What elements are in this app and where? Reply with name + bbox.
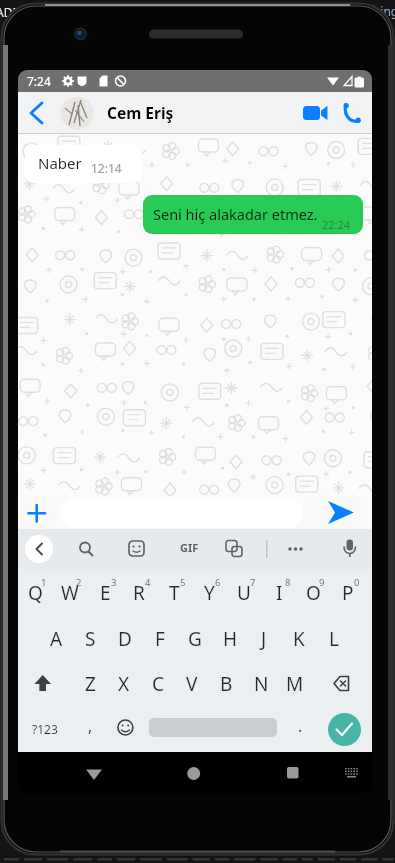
button[interactable]: . bbox=[283, 705, 317, 747]
button[interactable]: P bbox=[331, 572, 365, 614]
staticText: 2 bbox=[76, 576, 82, 589]
button[interactable]: ?123 bbox=[28, 708, 62, 750]
button[interactable] bbox=[275, 756, 311, 790]
staticText: S bbox=[85, 626, 96, 652]
staticText: 9 bbox=[319, 576, 325, 589]
button[interactable]: N bbox=[244, 663, 278, 705]
staticText: 6 bbox=[215, 576, 221, 589]
staticText: GIF bbox=[180, 540, 199, 555]
staticText: Q bbox=[28, 580, 43, 606]
button[interactable] bbox=[71, 534, 101, 564]
button[interactable]: R bbox=[122, 572, 156, 614]
button[interactable]: Q bbox=[18, 572, 52, 614]
button[interactable] bbox=[76, 756, 112, 790]
button[interactable]: G bbox=[178, 618, 212, 660]
button[interactable]: J bbox=[247, 618, 281, 660]
staticText: 22:24 bbox=[322, 217, 351, 232]
staticText: L bbox=[329, 626, 339, 652]
staticText: 4 bbox=[145, 576, 151, 589]
button[interactable]: , bbox=[73, 705, 107, 747]
staticText: , bbox=[88, 715, 93, 737]
staticText: 8 bbox=[285, 576, 291, 589]
button[interactable] bbox=[336, 96, 366, 130]
staticText: V bbox=[186, 671, 198, 697]
staticText: M bbox=[286, 671, 304, 697]
staticText: A bbox=[50, 626, 63, 652]
button[interactable]: W bbox=[53, 572, 87, 614]
button[interactable]: O bbox=[296, 572, 330, 614]
button[interactable] bbox=[219, 534, 249, 564]
staticText: W bbox=[61, 580, 79, 606]
staticText: . bbox=[298, 715, 303, 737]
staticText: Naber bbox=[38, 153, 82, 173]
button[interactable]: A bbox=[39, 618, 73, 660]
staticText: T bbox=[169, 580, 180, 606]
button[interactable] bbox=[18, 92, 52, 134]
button[interactable]: X bbox=[107, 663, 141, 705]
button[interactable] bbox=[25, 535, 53, 563]
button[interactable] bbox=[281, 534, 311, 564]
staticText: 1 bbox=[41, 576, 47, 589]
staticText: G bbox=[188, 626, 202, 652]
button[interactable]: Seni hiç alakadar etmez. bbox=[143, 195, 363, 234]
staticText: D bbox=[118, 626, 132, 652]
button[interactable]: S bbox=[73, 618, 107, 660]
staticText: Seni hiç alakadar etmez. bbox=[153, 204, 318, 224]
staticText: F bbox=[155, 626, 165, 652]
staticText: H bbox=[223, 626, 238, 652]
button[interactable]: L bbox=[317, 618, 351, 660]
staticText: 3 bbox=[111, 576, 117, 589]
button[interactable]: Z bbox=[73, 663, 107, 705]
staticText: O bbox=[306, 580, 321, 606]
staticText: ?123 bbox=[32, 721, 58, 737]
staticText: P bbox=[342, 580, 354, 606]
button[interactable] bbox=[328, 713, 361, 746]
button[interactable]: I bbox=[262, 572, 296, 614]
staticText: 5 bbox=[180, 576, 186, 589]
button[interactable]: F bbox=[143, 618, 177, 660]
button[interactable]: K bbox=[282, 618, 316, 660]
staticText: Z bbox=[85, 671, 96, 697]
staticText: B bbox=[220, 671, 233, 697]
button[interactable]: B bbox=[209, 663, 243, 705]
staticText: 7 bbox=[250, 576, 256, 589]
button[interactable]: E bbox=[88, 572, 122, 614]
button[interactable] bbox=[149, 718, 277, 737]
button[interactable] bbox=[176, 756, 212, 790]
button[interactable] bbox=[320, 498, 360, 528]
staticText: R bbox=[133, 580, 145, 606]
staticText: Y bbox=[204, 580, 215, 606]
button[interactable]: C bbox=[141, 663, 175, 705]
staticText: 7:24 bbox=[27, 73, 51, 89]
button[interactable]: U bbox=[227, 572, 261, 614]
button[interactable]: Naber bbox=[25, 145, 142, 183]
staticText: ADB bbox=[0, 4, 21, 20]
button[interactable]: V bbox=[175, 663, 209, 705]
staticText: U bbox=[237, 580, 251, 606]
staticText: J bbox=[261, 626, 267, 652]
staticText: X bbox=[118, 671, 130, 697]
button[interactable]: H bbox=[213, 618, 247, 660]
button[interactable] bbox=[335, 534, 365, 564]
staticText: N bbox=[254, 671, 269, 697]
staticText: C bbox=[152, 671, 165, 697]
staticText: tings bbox=[376, 3, 395, 19]
button[interactable]: GIF bbox=[119, 527, 259, 567]
staticText: 12:14 bbox=[91, 160, 122, 176]
button[interactable]: M bbox=[278, 663, 312, 705]
button[interactable]: D bbox=[108, 618, 142, 660]
staticText: K bbox=[293, 626, 305, 652]
staticText: Cem Eriş bbox=[107, 102, 174, 123]
staticText: E bbox=[100, 580, 111, 606]
button[interactable]: Y bbox=[192, 572, 226, 614]
staticText: I bbox=[276, 580, 283, 606]
button[interactable] bbox=[298, 96, 332, 130]
button[interactable] bbox=[22, 498, 52, 528]
staticText: 0 bbox=[354, 576, 360, 589]
button[interactable]: T bbox=[157, 572, 191, 614]
button[interactable] bbox=[122, 534, 152, 564]
